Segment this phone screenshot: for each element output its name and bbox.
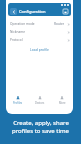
button[interactable]: Protocol bbox=[6, 36, 73, 44]
button[interactable]: Nickname bbox=[6, 28, 73, 36]
staticText: Load profile bbox=[30, 47, 49, 52]
button[interactable]: Back bbox=[10, 8, 17, 15]
button[interactable]: Load profile bbox=[28, 46, 51, 53]
staticText: Profiles bbox=[13, 101, 23, 105]
staticText: Nickname bbox=[10, 30, 26, 34]
button[interactable]: Devices bbox=[29, 94, 51, 107]
staticText: Operation mode bbox=[10, 22, 35, 26]
button[interactable]: Operation mode bbox=[6, 20, 73, 28]
staticText: Router bbox=[54, 22, 65, 26]
button[interactable]: More bbox=[51, 94, 73, 107]
staticText: Configuration bbox=[19, 9, 46, 14]
staticText: More bbox=[59, 101, 66, 105]
staticText: profiles to save time bbox=[12, 127, 69, 135]
button[interactable]: Profiles bbox=[6, 94, 29, 107]
staticText: Protocol bbox=[10, 38, 23, 42]
staticText: Create, apply, share bbox=[13, 119, 69, 127]
staticText: Devices bbox=[35, 101, 45, 105]
button[interactable]: Save profile bbox=[62, 8, 69, 15]
